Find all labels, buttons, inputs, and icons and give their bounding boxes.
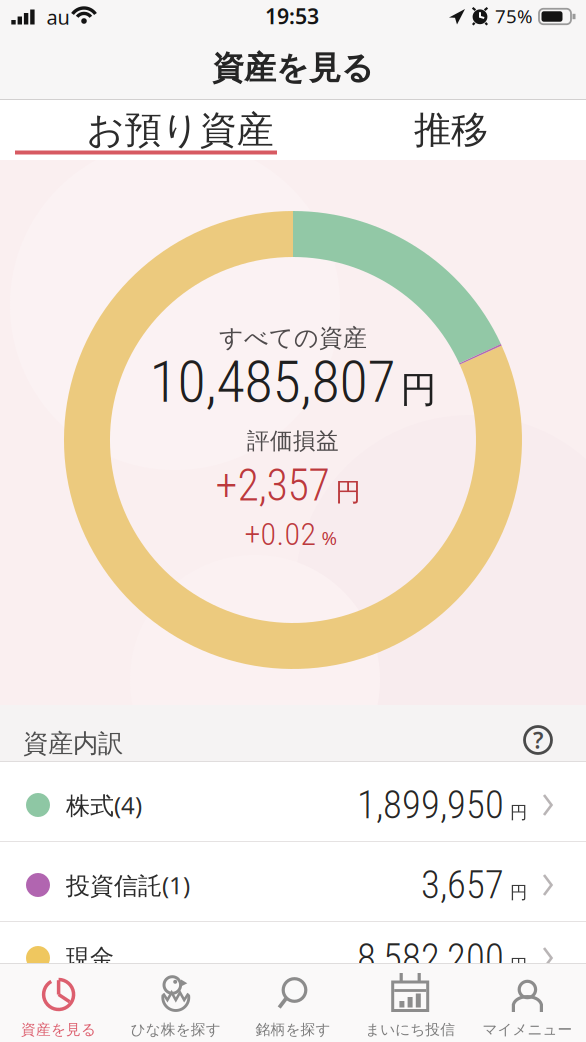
- staticText: 3,657: [421, 862, 504, 908]
- staticText: 銘柄を探す: [255, 1020, 330, 1038]
- staticText: 評価損益: [247, 427, 339, 455]
- staticText: 投資信託(1): [66, 869, 190, 901]
- button[interactable]: ?: [516, 718, 560, 762]
- button[interactable]: [352, 964, 469, 1042]
- button[interactable]: [117, 964, 234, 1042]
- staticText: 円: [510, 802, 527, 823]
- button[interactable]: お預り資産: [0, 100, 293, 160]
- button[interactable]: 投資信託(1): [0, 842, 586, 922]
- staticText: すべての資産: [219, 323, 367, 353]
- staticText: au: [46, 4, 69, 30]
- staticText: ひな株を探す: [131, 1020, 221, 1038]
- staticText: 資産を見る: [212, 48, 374, 88]
- staticText: +0.02: [244, 515, 316, 553]
- staticText: %: [321, 525, 337, 550]
- staticText: お預り資産: [86, 107, 273, 153]
- staticText: 8,582,200: [357, 935, 504, 981]
- staticText: 75%: [495, 4, 533, 28]
- staticText: まいにち投信: [365, 1020, 455, 1038]
- staticText: 円: [400, 368, 436, 412]
- staticText: 株式(4): [66, 789, 142, 821]
- staticText: 円: [510, 882, 527, 903]
- button[interactable]: [234, 964, 352, 1042]
- button[interactable]: 現金: [0, 922, 586, 963]
- button[interactable]: 株式(4): [0, 762, 586, 842]
- button[interactable]: [0, 964, 117, 1042]
- staticText: 現金: [66, 943, 114, 973]
- staticText: 円: [510, 955, 527, 976]
- staticText: マイメニュー: [482, 1020, 572, 1038]
- button[interactable]: 推移: [293, 100, 586, 160]
- staticText: 資産を見る: [21, 1020, 96, 1038]
- staticText: +2,357: [215, 460, 329, 511]
- staticText: 1,899,950: [357, 782, 504, 828]
- staticText: 19:53: [265, 2, 319, 30]
- staticText: 推移: [414, 107, 488, 153]
- staticText: 円: [335, 476, 360, 508]
- button[interactable]: [469, 964, 586, 1042]
- staticText: 10,485,807: [149, 348, 395, 416]
- staticText: ?: [533, 725, 543, 755]
- staticText: 資産内訳: [23, 728, 123, 759]
